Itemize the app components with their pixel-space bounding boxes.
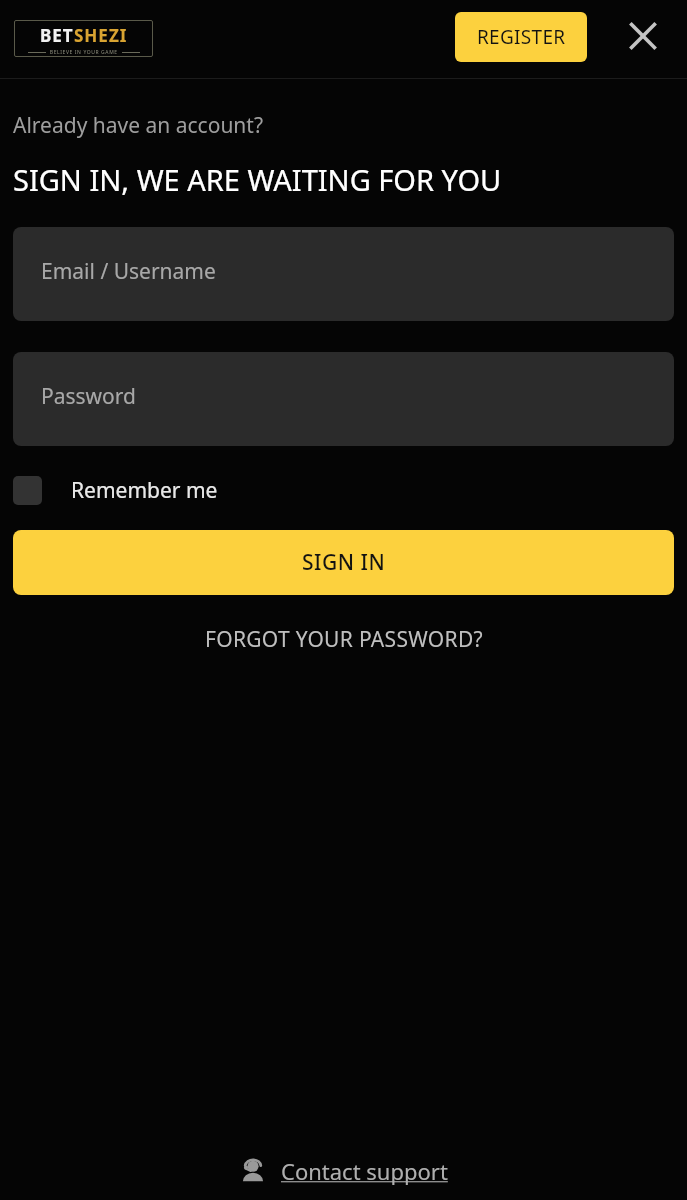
staticText: SIGN IN	[302, 548, 386, 577]
button[interactable]: BetShezi home	[14, 20, 153, 57]
staticText: Password	[41, 382, 136, 411]
button[interactable]: SIGN IN	[13, 530, 674, 595]
button[interactable]: Close	[618, 11, 668, 61]
staticText: Email / Username	[41, 257, 216, 286]
staticText: FORGOT YOUR PASSWORD?	[205, 625, 483, 654]
button[interactable]: REGISTER	[455, 12, 587, 62]
button[interactable]: Password	[13, 352, 674, 446]
staticText: Already have an account?	[13, 111, 264, 140]
staticText: Remember me	[71, 476, 218, 505]
button[interactable]: Remember me	[13, 468, 218, 512]
button[interactable]: Contact support	[239, 1156, 448, 1186]
staticText: REGISTER	[477, 24, 566, 50]
staticText: BELIEVE IN YOUR GAME	[46, 49, 122, 56]
staticText: SHEZI	[74, 24, 128, 47]
staticText: Contact support	[281, 1156, 448, 1186]
button[interactable]: FORGOT YOUR PASSWORD?	[0, 619, 687, 659]
button[interactable]: Email / Username	[13, 227, 674, 321]
staticText: BET	[40, 24, 74, 47]
staticText: SIGN IN, WE ARE WAITING FOR YOU	[13, 160, 502, 199]
